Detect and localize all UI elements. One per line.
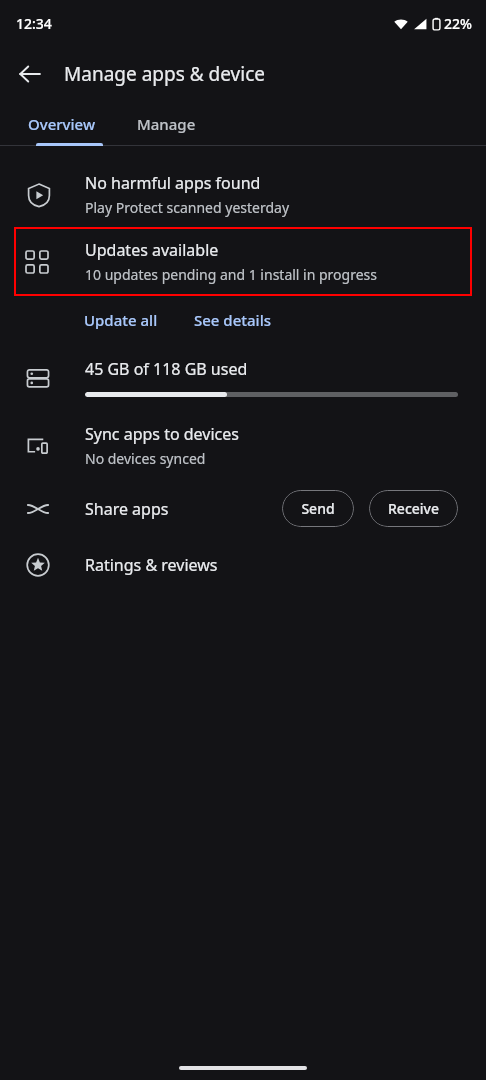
staticText: Play Protect scanned yesterday [85, 198, 290, 217]
staticText: Receive [388, 499, 439, 518]
staticText: 12:34 [16, 14, 52, 33]
button[interactable]: Manage [121, 102, 212, 146]
staticText: Ratings & reviews [85, 554, 218, 576]
button[interactable]: Ratings & reviews [0, 537, 486, 593]
button[interactable]: Receive [369, 490, 458, 527]
staticText: Share apps [85, 498, 282, 520]
staticText: 45 GB of 118 GB used [85, 358, 248, 380]
staticText: No devices synced [85, 449, 206, 468]
staticText: Sync apps to devices [85, 423, 239, 445]
staticText: Manage [137, 114, 196, 134]
button[interactable]: Back [6, 50, 54, 98]
staticText: Update all [84, 310, 158, 330]
button[interactable]: 45 GB of 118 GB used [0, 344, 486, 411]
button[interactable]: Send [282, 490, 354, 527]
button[interactable]: Update all [70, 302, 172, 338]
button[interactable]: Updates available [14, 227, 472, 296]
staticText: 22% [444, 14, 472, 33]
staticText: See details [194, 310, 271, 330]
button[interactable]: No harmful apps found [0, 162, 486, 227]
staticText: Send [301, 499, 335, 518]
staticText: No harmful apps found [85, 172, 261, 194]
staticText: Manage apps & device [64, 61, 265, 87]
button[interactable]: Sync apps to devices [0, 411, 486, 480]
button[interactable]: Overview [12, 102, 111, 146]
staticText: Overview [28, 114, 95, 134]
staticText: Updates available [85, 239, 219, 261]
staticText: 10 updates pending and 1 install in prog… [85, 265, 378, 284]
button[interactable]: See details [186, 302, 279, 338]
